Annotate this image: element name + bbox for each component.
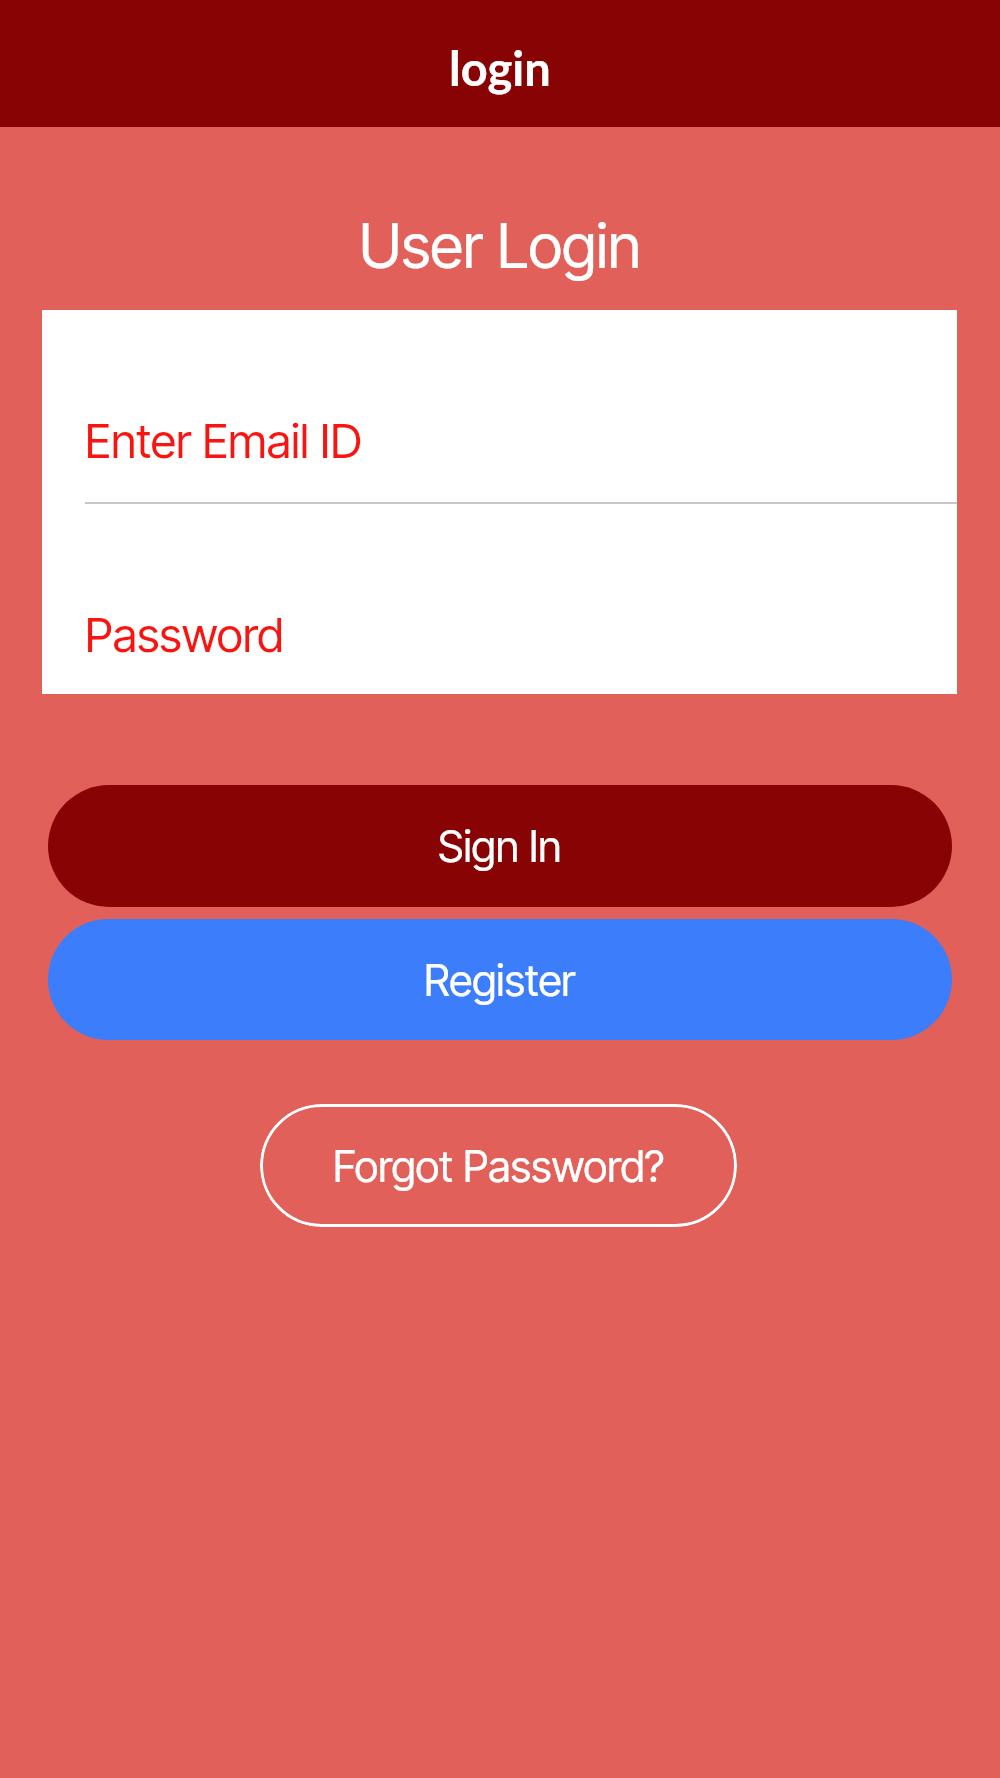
button[interactable]: Sign In [48, 785, 952, 907]
staticText: Password [85, 606, 284, 663]
button[interactable]: Password [42, 504, 957, 694]
staticText: Forgot Password? [333, 1140, 665, 1192]
staticText: User Login [359, 209, 641, 283]
staticText: Enter Email ID [85, 412, 362, 469]
staticText: Sign In [438, 820, 562, 872]
staticText: login [449, 40, 551, 96]
staticText: Register [424, 954, 576, 1006]
button[interactable]: Enter Email ID [42, 310, 957, 502]
button[interactable]: Register [48, 919, 952, 1040]
button[interactable]: Forgot Password? [260, 1104, 737, 1227]
